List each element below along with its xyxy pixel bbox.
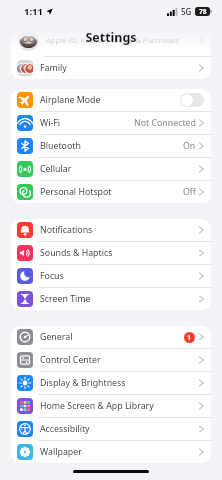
staticText: Display & Brightness: [40, 377, 126, 389]
staticText: Cellular: [40, 163, 72, 175]
staticText: Settings: [0, 29, 222, 46]
button[interactable]: Apple ID, iCloud+, Media & Purchases: [11, 24, 211, 56]
staticText: General: [40, 331, 73, 343]
button[interactable]: Focus: [11, 265, 211, 287]
staticText: Screen Time: [40, 293, 91, 305]
staticText: Wallpaper: [40, 446, 82, 458]
button[interactable]: Wallpaper: [11, 441, 211, 463]
staticText: Off: [183, 186, 196, 198]
button[interactable]: Control Center: [11, 349, 211, 371]
button[interactable]: Airplane Mode: [11, 89, 211, 111]
staticText: Accessibility: [40, 423, 90, 435]
staticText: Personal Hotspot: [40, 186, 112, 198]
button[interactable]: Wi-Fi: [11, 112, 211, 134]
staticText: Sounds & Haptics: [40, 247, 113, 259]
staticText: Apple ID, iCloud+, Media & Purchases: [46, 35, 180, 45]
staticText: Wi-Fi: [40, 117, 61, 129]
staticText: Family: [40, 62, 67, 74]
button[interactable]: Airplane Mode toggle: [180, 93, 204, 107]
button[interactable]: Bluetooth: [11, 135, 211, 157]
staticText: Control Center: [40, 354, 101, 366]
button[interactable]: Notifications: [11, 219, 211, 241]
staticText: 78: [199, 7, 207, 16]
button[interactable]: Sounds & Haptics: [11, 242, 211, 264]
button[interactable]: Personal Hotspot: [11, 181, 211, 203]
staticText: Home Screen & App Library: [40, 400, 154, 412]
staticText: 1: [187, 333, 192, 343]
staticText: Bluetooth: [40, 140, 81, 152]
staticText: Airplane Mode: [40, 94, 101, 106]
button[interactable]: General: [11, 326, 211, 348]
staticText: Focus: [40, 270, 64, 282]
staticText: On: [183, 140, 196, 152]
button[interactable]: Family: [11, 57, 211, 79]
button[interactable]: Cellular: [11, 158, 211, 180]
staticText: 1:11: [24, 5, 43, 18]
staticText: Not Connected: [134, 117, 196, 129]
staticText: Notifications: [40, 224, 93, 236]
button[interactable]: Display & Brightness: [11, 372, 211, 394]
button[interactable]: Screen Time: [11, 288, 211, 310]
button[interactable]: Home Screen & App Library: [11, 395, 211, 417]
button[interactable]: Accessibility: [11, 418, 211, 440]
staticText: 5G: [181, 6, 192, 17]
